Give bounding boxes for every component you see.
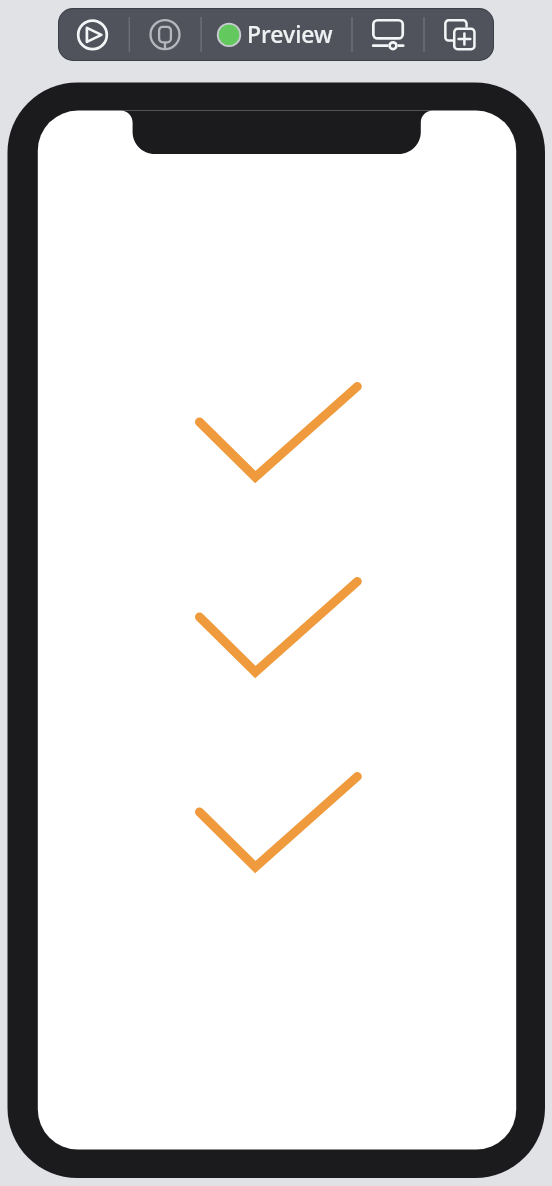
button[interactable]: Preview xyxy=(201,8,351,61)
button[interactable]: Add preview xyxy=(422,8,494,61)
staticText: Preview xyxy=(247,18,333,49)
button[interactable]: Run preview xyxy=(58,8,129,61)
button[interactable]: UI check mode xyxy=(351,8,422,61)
button[interactable]: Interactive preview xyxy=(129,8,201,61)
